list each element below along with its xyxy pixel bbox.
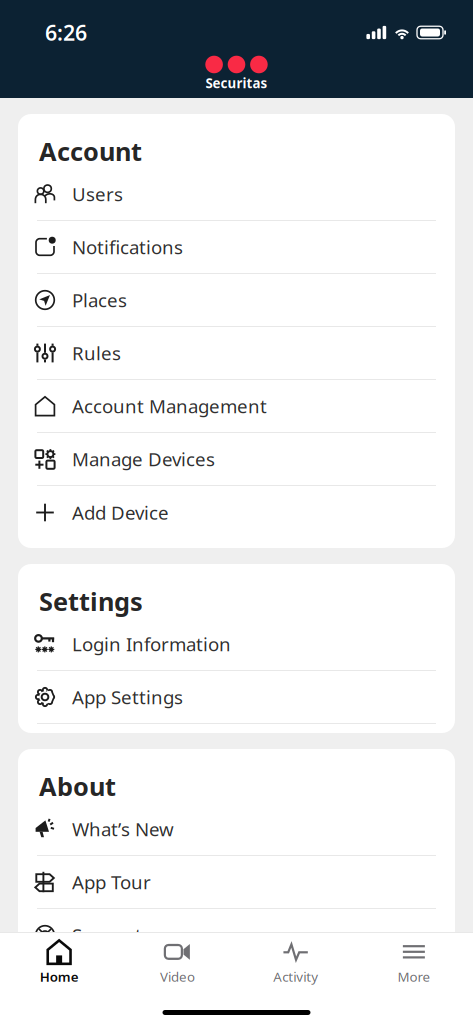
- staticText: Places: [72, 288, 127, 312]
- staticText: About: [39, 769, 116, 803]
- button[interactable]: What’s New: [18, 803, 455, 856]
- staticText: Account: [39, 134, 142, 168]
- staticText: Securitas: [205, 74, 267, 92]
- button[interactable]: App Tour: [18, 856, 455, 909]
- button[interactable]: Notifications: [18, 221, 455, 274]
- button[interactable]: Support: [18, 909, 455, 962]
- staticText: Settings: [39, 584, 143, 618]
- staticText: App Tour: [72, 870, 151, 894]
- staticText: Video: [160, 968, 195, 985]
- button[interactable]: Home: [0, 939, 118, 985]
- button[interactable]: More: [355, 939, 473, 985]
- button[interactable]: Account Management: [18, 380, 455, 433]
- button[interactable]: Activity: [236, 939, 355, 985]
- staticText: Login Information: [72, 632, 231, 656]
- staticText: Users: [72, 182, 123, 206]
- button[interactable]: Users: [18, 168, 455, 221]
- staticText: App Settings: [72, 685, 183, 709]
- button[interactable]: App Settings: [18, 671, 455, 724]
- staticText: Account Management: [72, 394, 267, 418]
- staticText: More: [397, 968, 430, 985]
- staticText: Support: [72, 923, 142, 947]
- staticText: 6:26: [45, 18, 87, 47]
- button[interactable]: Places: [18, 274, 455, 327]
- button[interactable]: Login Information: [18, 618, 455, 671]
- staticText: Notifications: [72, 235, 183, 259]
- staticText: Rules: [72, 341, 121, 365]
- button[interactable]: Video: [118, 939, 236, 985]
- button[interactable]: Add Device: [18, 486, 455, 539]
- staticText: Home: [40, 968, 79, 985]
- button[interactable]: Manage Devices: [18, 433, 455, 486]
- staticText: Add Device: [72, 500, 169, 525]
- staticText: Activity: [273, 968, 318, 985]
- button[interactable]: Rules: [18, 327, 455, 380]
- staticText: What’s New: [72, 817, 174, 841]
- staticText: Manage Devices: [72, 447, 215, 471]
